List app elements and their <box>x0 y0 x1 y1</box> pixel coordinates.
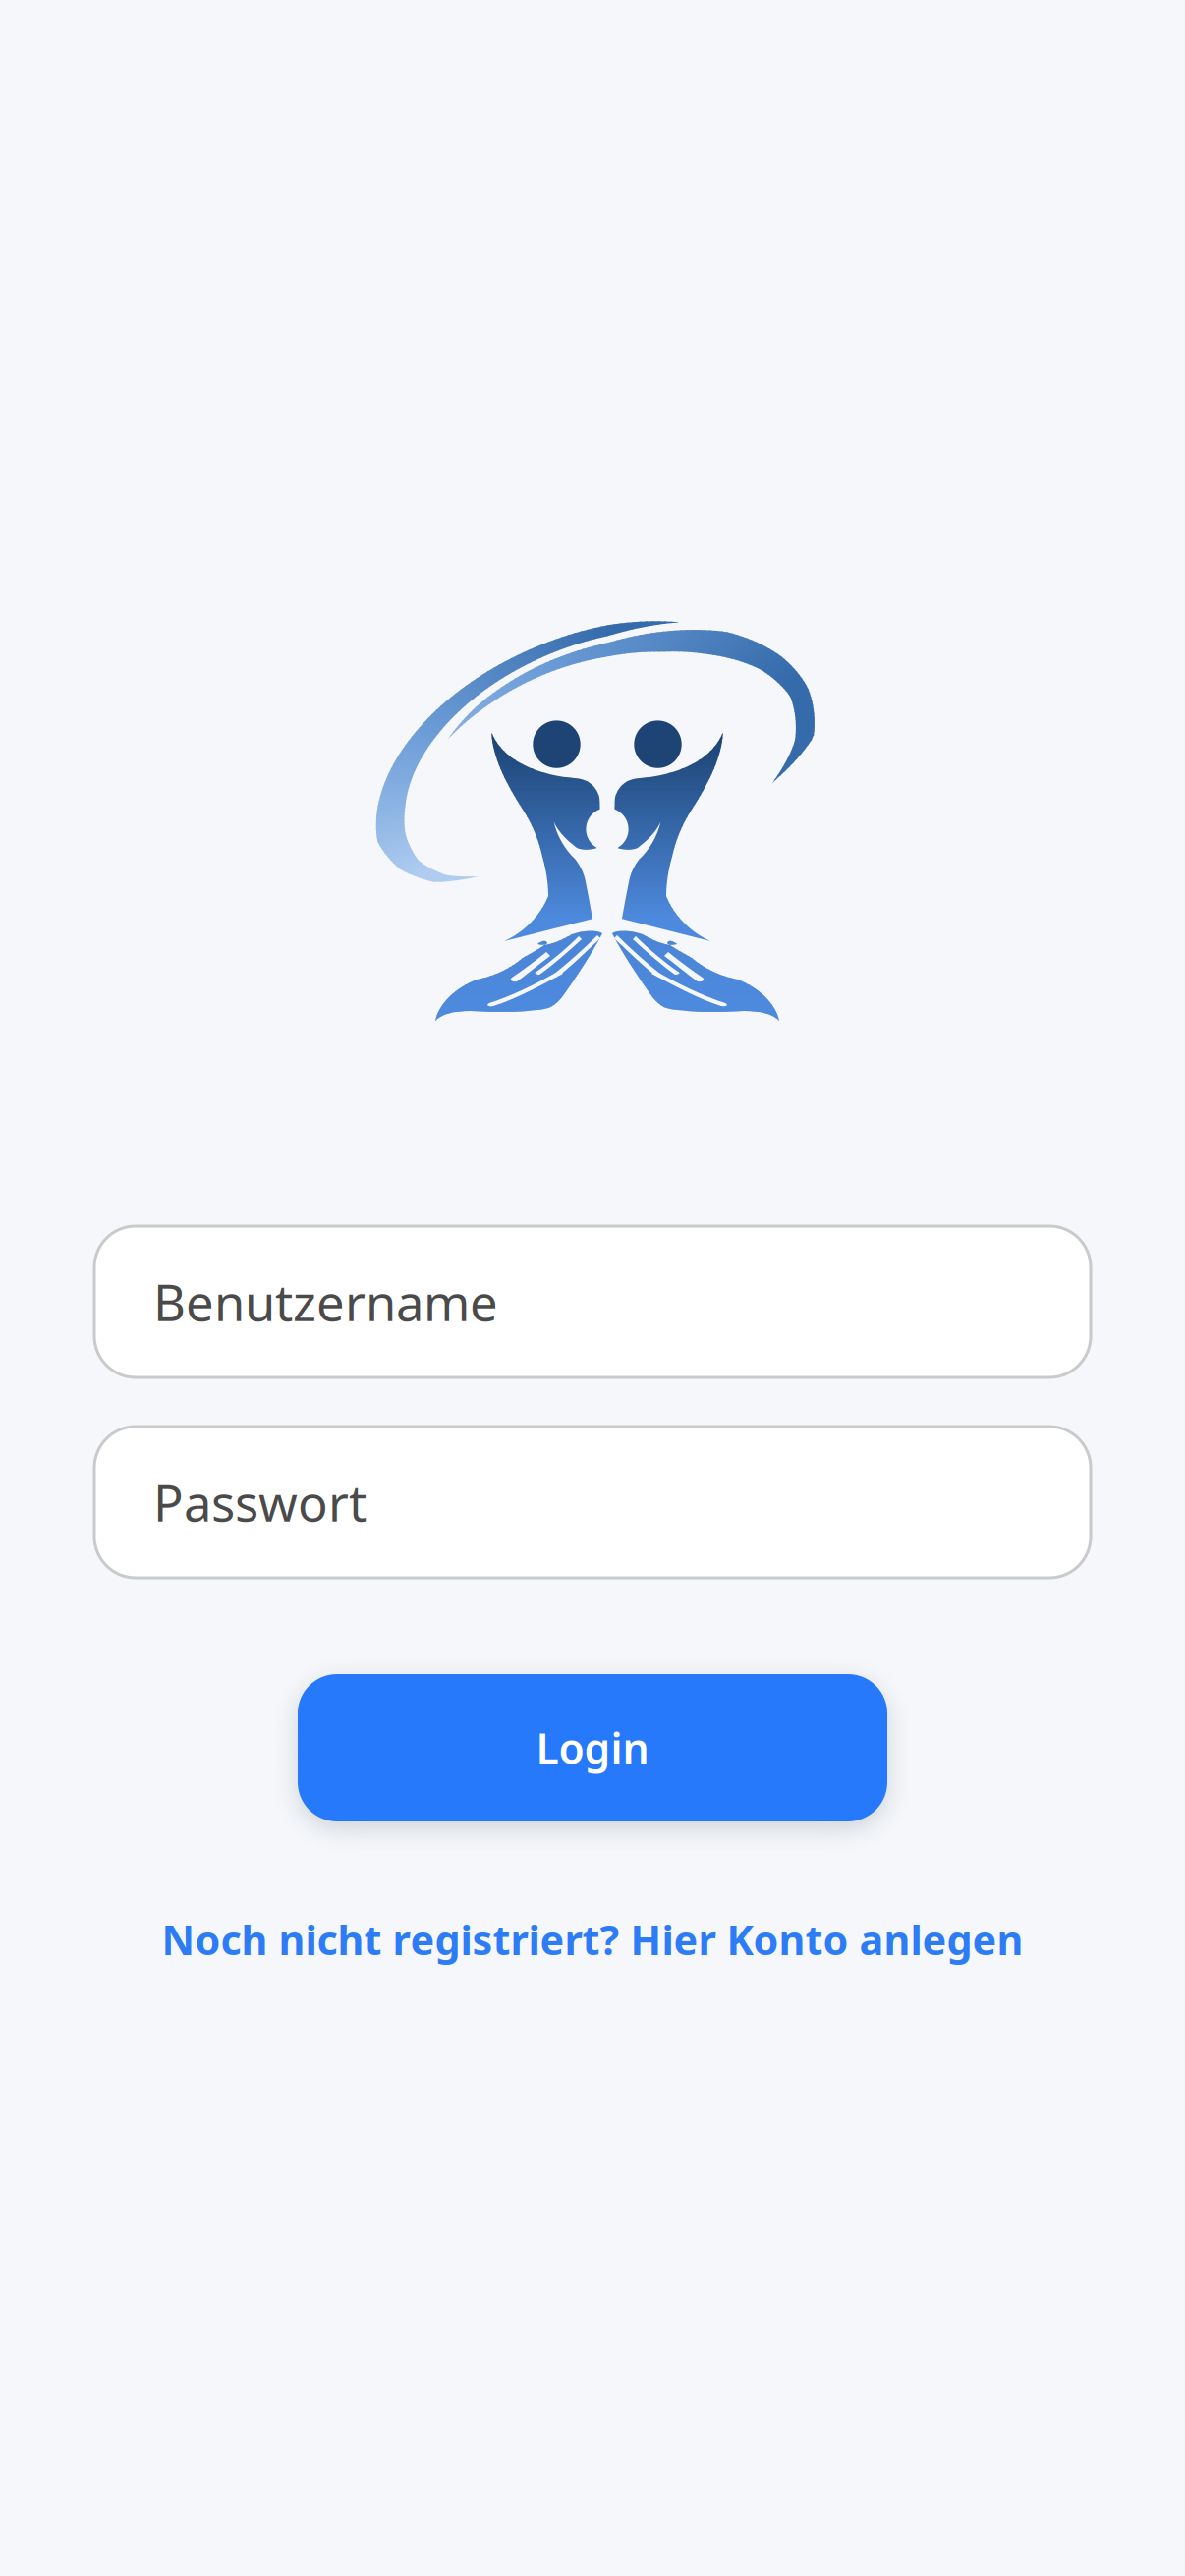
staticText: Benutzername <box>153 1269 498 1335</box>
button[interactable]: Login <box>298 1674 887 1821</box>
staticText: Login <box>536 1720 649 1776</box>
button[interactable]: Noch nicht registriert? Hier Konto anleg… <box>162 1912 1023 1966</box>
staticText: Noch nicht registriert? Hier Konto anleg… <box>162 1912 1023 1966</box>
staticText: Passwort <box>153 1469 367 1535</box>
